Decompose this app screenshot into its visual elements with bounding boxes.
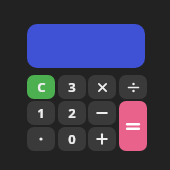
button[interactable]: C <box>27 75 55 99</box>
staticText: 0 <box>68 130 76 148</box>
button[interactable]: Minus <box>88 101 116 125</box>
button[interactable]: Equals <box>119 101 147 151</box>
button[interactable]: 0 <box>58 127 86 151</box>
staticText: 1 <box>37 104 45 122</box>
button[interactable]: Plus <box>88 127 116 151</box>
button[interactable]: 3 <box>58 75 86 99</box>
staticText: 2 <box>68 104 76 122</box>
button[interactable]: Calculator display <box>27 24 145 68</box>
button[interactable]: Decimal point <box>27 127 55 151</box>
staticText: 3 <box>68 78 76 96</box>
button[interactable]: Divide <box>119 75 147 99</box>
staticText: C <box>37 78 46 96</box>
button[interactable]: 1 <box>27 101 55 125</box>
button[interactable]: Multiply <box>88 75 116 99</box>
button[interactable]: 2 <box>58 101 86 125</box>
